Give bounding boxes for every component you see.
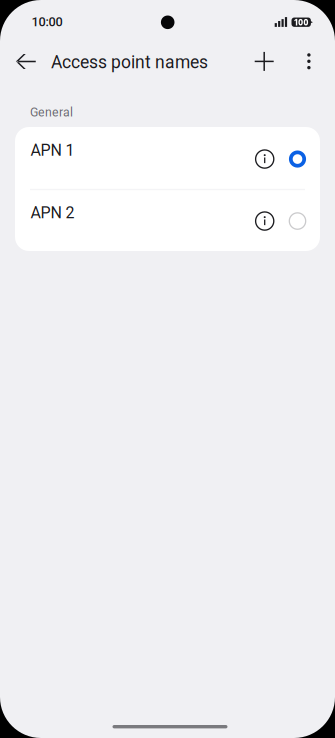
button[interactable]: Back (4, 38, 48, 84)
staticText: APN 2 (30, 203, 74, 222)
button[interactable]: Add (242, 38, 286, 84)
staticText: 10:00 (31, 14, 62, 29)
staticText: General (30, 105, 73, 119)
button[interactable]: About APN 1 (248, 137, 282, 181)
button[interactable]: APN 1 selected (282, 137, 312, 181)
button[interactable]: More options (290, 38, 328, 84)
button[interactable]: APN 1 (15, 127, 320, 189)
button[interactable]: Select APN 2 (282, 199, 312, 243)
staticText: Access point names (51, 52, 208, 72)
staticText: APN 1 (30, 141, 74, 160)
button[interactable]: About APN 2 (248, 199, 282, 243)
button[interactable]: APN 2 (15, 189, 320, 251)
